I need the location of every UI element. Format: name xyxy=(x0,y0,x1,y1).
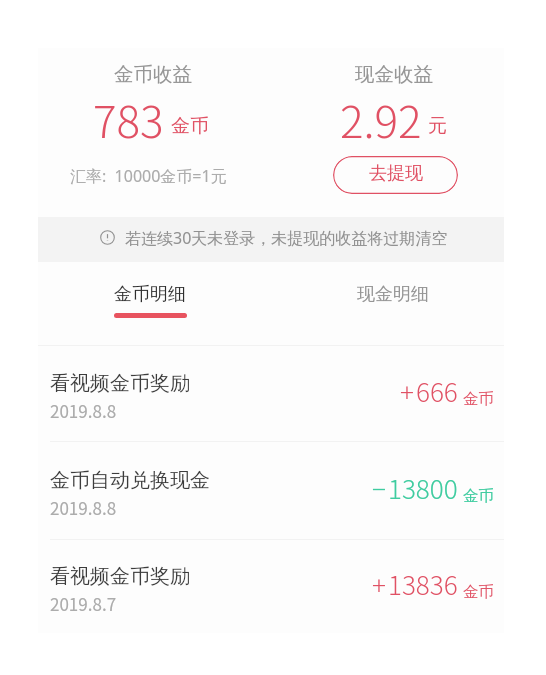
staticText: 金币明细 xyxy=(114,283,186,306)
button[interactable]: 看视频金币奖励 xyxy=(38,540,504,633)
staticText: 去提现 xyxy=(369,162,423,185)
staticText: 13800 xyxy=(388,469,458,507)
button[interactable]: 看视频金币奖励 xyxy=(38,346,504,441)
staticText: 2019.8.7 xyxy=(50,591,117,616)
staticText: 现金明细 xyxy=(357,283,429,306)
staticText: − xyxy=(372,469,386,507)
staticText: + xyxy=(372,565,386,603)
staticText: 金币自动兑换现金 xyxy=(50,468,210,493)
staticText: 783 xyxy=(93,87,164,151)
staticText: 现金收益 xyxy=(355,62,433,87)
staticText: + xyxy=(400,372,414,410)
staticText: 金币 xyxy=(463,582,494,602)
staticText: 13836 xyxy=(388,565,458,603)
staticText: 看视频金币奖励 xyxy=(50,371,190,396)
button[interactable]: 金币自动兑换现金 xyxy=(38,442,504,539)
staticText: 金币收益 xyxy=(114,62,192,87)
staticText: 2019.8.8 xyxy=(50,495,117,520)
staticText: 元 xyxy=(428,114,447,138)
button[interactable]: 金币明细 xyxy=(38,262,271,345)
staticText: 若连续30天未登录，未提现的收益将过期清空 xyxy=(125,227,448,249)
staticText: 金币 xyxy=(463,486,494,506)
staticText: 汇率: 10000金币=1元 xyxy=(70,165,227,187)
staticText: 666 xyxy=(416,372,458,410)
staticText: 金币 xyxy=(171,114,209,138)
button[interactable]: 现金明细 xyxy=(271,262,504,345)
staticText: 2.92 xyxy=(340,87,422,151)
staticText: 金币 xyxy=(463,389,494,409)
other: Info xyxy=(100,230,115,245)
staticText: 2019.8.8 xyxy=(50,398,117,423)
button[interactable]: 去提现 xyxy=(333,156,458,194)
staticText: 看视频金币奖励 xyxy=(50,564,190,589)
